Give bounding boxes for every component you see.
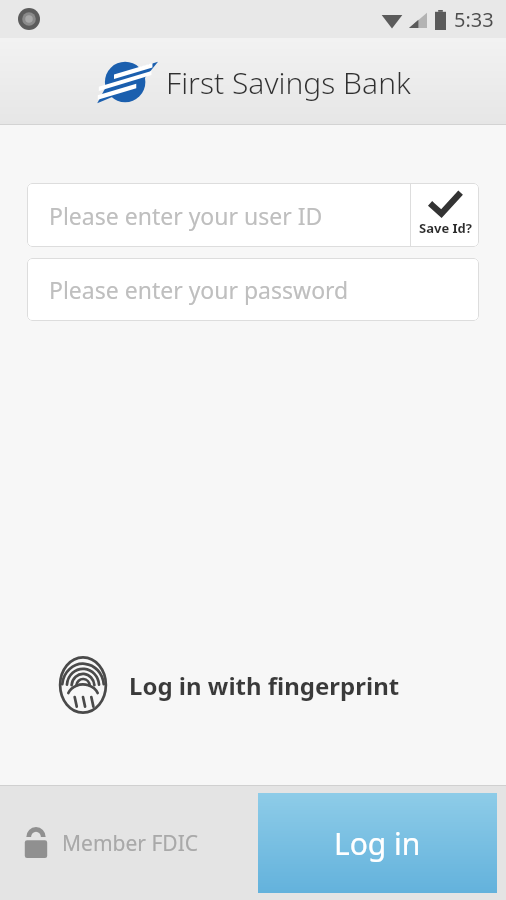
button[interactable]: Member FDIC <box>22 826 199 860</box>
staticText: Log in <box>334 823 421 864</box>
button[interactable]: Please enter your user ID <box>27 183 410 247</box>
staticText: Please enter your user ID <box>49 200 323 231</box>
button[interactable]: Save Id? <box>411 183 479 247</box>
staticText: Save Id? <box>419 219 472 237</box>
staticText: 5:33 <box>454 6 494 33</box>
staticText: First Savings Bank <box>166 62 411 103</box>
button[interactable]: Log in <box>258 793 497 893</box>
staticText: Log in with fingerprint <box>129 669 400 702</box>
staticText: Please enter your password <box>49 274 349 305</box>
button[interactable]: Please enter your password <box>27 258 479 321</box>
button[interactable]: Log in with fingerprint <box>57 655 400 715</box>
staticText: Member FDIC <box>62 829 199 858</box>
